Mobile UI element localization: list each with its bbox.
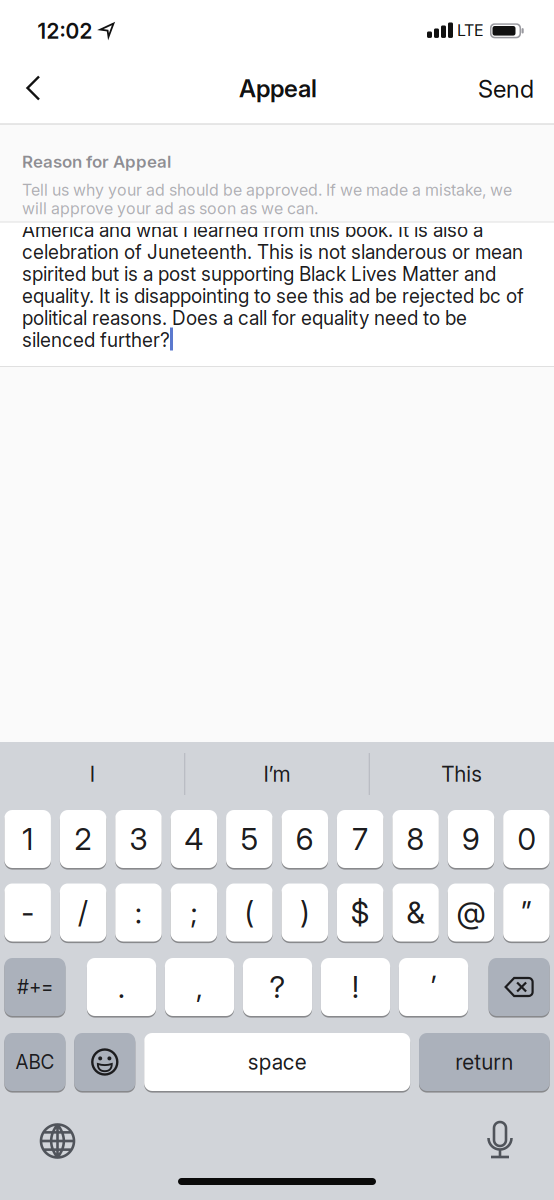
button[interactable]: - <box>4 882 51 942</box>
button[interactable]: I’m <box>186 742 368 806</box>
staticText: return <box>455 1050 513 1074</box>
staticText: I <box>90 761 95 787</box>
button[interactable]: 4 <box>171 809 217 869</box>
button[interactable]: @ <box>448 882 494 942</box>
button[interactable]: $ <box>337 882 383 942</box>
button[interactable]: , <box>165 957 234 1017</box>
staticText: equality. It is disappointing to see thi… <box>22 284 524 307</box>
button[interactable]: 7 <box>337 809 383 869</box>
staticText: / <box>78 895 88 930</box>
staticText: 1 <box>22 821 33 857</box>
staticText: ” <box>521 895 532 930</box>
staticText: 12:02 <box>37 18 92 44</box>
button[interactable]: Next keyboard <box>32 1116 82 1166</box>
button[interactable]: space <box>144 1032 410 1092</box>
button[interactable]: 8 <box>392 809 439 869</box>
staticText: ) <box>300 895 309 930</box>
staticText: This <box>441 761 482 787</box>
staticText: 8 <box>407 821 425 857</box>
button[interactable]: Send <box>461 67 551 111</box>
staticText: 9 <box>462 821 480 857</box>
button[interactable]: Emoji <box>74 1032 135 1092</box>
staticText: 6 <box>296 821 314 857</box>
staticText: ABC <box>15 1051 54 1073</box>
button[interactable]: : <box>115 882 162 942</box>
button[interactable]: ; <box>171 882 217 942</box>
staticText: political reasons. Does a call for equal… <box>22 306 467 329</box>
button[interactable]: & <box>392 882 439 942</box>
staticText: America and what I learned from this boo… <box>22 218 483 241</box>
staticText: LTE <box>457 21 484 40</box>
button[interactable]: 1 <box>4 809 51 869</box>
staticText: 3 <box>129 821 147 857</box>
staticText: ( <box>245 895 254 930</box>
staticText: spirited but is a post supporting Black … <box>22 262 496 285</box>
staticText: @ <box>456 895 485 930</box>
staticText: 7 <box>352 821 368 857</box>
button[interactable]: ! <box>321 957 390 1017</box>
staticText: celebration of Juneteenth. This is not s… <box>22 240 523 263</box>
button[interactable]: 3 <box>115 809 162 869</box>
button[interactable]: ( <box>226 882 273 942</box>
staticText: $ <box>351 895 370 930</box>
button[interactable]: ” <box>503 882 550 942</box>
staticText: 2 <box>75 821 92 857</box>
staticText: ’ <box>430 969 436 1005</box>
button[interactable]: 0 <box>503 809 550 869</box>
button[interactable]: return <box>419 1032 550 1092</box>
staticText: 4 <box>184 821 203 857</box>
staticText: will approve your ad as soon as we can. <box>22 199 318 218</box>
button[interactable]: Back <box>11 66 55 110</box>
staticText: - <box>21 895 34 930</box>
button[interactable]: . <box>87 957 156 1017</box>
staticText: space <box>248 1050 307 1074</box>
staticText: , <box>196 969 203 1005</box>
staticText: ; <box>190 895 197 930</box>
staticText: I’m <box>263 761 290 787</box>
staticText: Tell us why your ad should be approved. … <box>22 180 512 200</box>
staticText: ? <box>269 969 285 1005</box>
staticText: 5 <box>241 821 258 857</box>
staticText: & <box>407 895 425 930</box>
button[interactable]: #+= <box>4 957 65 1017</box>
button[interactable]: 2 <box>60 809 106 869</box>
staticText: . <box>118 969 125 1005</box>
staticText: Appeal <box>239 74 317 103</box>
staticText: 0 <box>517 821 535 857</box>
button[interactable]: ABC <box>4 1032 65 1092</box>
button[interactable]: I <box>1 742 183 806</box>
button[interactable]: 6 <box>282 809 328 869</box>
button[interactable]: 9 <box>448 809 494 869</box>
button[interactable]: ? <box>243 957 312 1017</box>
button[interactable]: / <box>60 882 106 942</box>
staticText: Reason for Appeal <box>22 151 171 172</box>
button[interactable]: ’ <box>399 957 468 1017</box>
staticText: : <box>135 895 142 930</box>
staticText: silenced further? <box>22 328 170 351</box>
button[interactable]: 5 <box>226 809 273 869</box>
button[interactable]: ) <box>282 882 328 942</box>
button[interactable]: This <box>371 742 553 806</box>
staticText: ! <box>352 969 359 1005</box>
staticText: Send <box>478 74 534 103</box>
button[interactable]: Dictate <box>475 1116 525 1166</box>
button[interactable]: Delete <box>489 957 550 1017</box>
staticText: #+= <box>17 976 53 998</box>
